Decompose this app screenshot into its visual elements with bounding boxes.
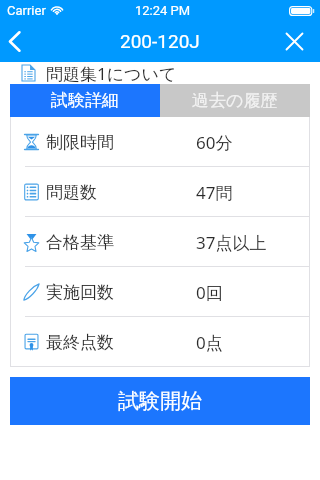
staticText: 合格基準 <box>46 232 114 253</box>
staticText: 60分 <box>196 131 233 154</box>
staticText: Carrier <box>7 3 46 18</box>
staticText: 12:24 PM <box>135 3 191 18</box>
button[interactable]: 制限時間 <box>10 117 310 167</box>
staticText: 47問 <box>196 181 233 204</box>
button[interactable]: 試験開始 <box>10 377 310 425</box>
staticText: 200-120J <box>120 30 200 52</box>
button[interactable]: 実施回数 <box>10 267 310 317</box>
staticText: 実施回数 <box>46 282 114 303</box>
button[interactable]: 試験詳細 <box>10 84 160 117</box>
staticText: 試験詳細 <box>51 90 119 111</box>
staticText: 過去の履歴 <box>192 90 278 111</box>
staticText: 問題数 <box>46 182 97 203</box>
staticText: 試験開始 <box>118 388 202 414</box>
button[interactable]: 最終点数 <box>10 317 310 367</box>
button[interactable]: Close <box>280 20 320 62</box>
staticText: 問題集1について <box>46 62 177 84</box>
button[interactable]: Back <box>0 20 40 62</box>
button[interactable]: 問題数 <box>10 167 310 217</box>
button[interactable]: 合格基準 <box>10 217 310 267</box>
staticText: 制限時間 <box>46 132 114 153</box>
staticText: 0回 <box>196 281 223 304</box>
staticText: 37点以上 <box>196 231 267 254</box>
button[interactable]: 過去の履歴 <box>160 84 310 117</box>
staticText: 0点 <box>196 331 223 354</box>
staticText: 最終点数 <box>46 332 114 353</box>
